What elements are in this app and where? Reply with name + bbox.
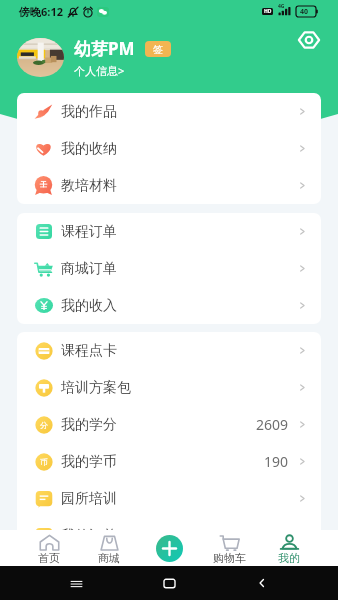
staticText: 我的学币 (61, 453, 117, 471)
staticText: 我的作品 (61, 103, 117, 121)
staticText: 教培材料 (61, 177, 117, 195)
button[interactable]: 我的作品 (17, 93, 321, 130)
button[interactable]: 我的收纳 (17, 130, 321, 167)
button[interactable]: 币 (17, 443, 321, 480)
other: Back (256, 577, 268, 589)
button[interactable]: Avatar (17, 38, 64, 77)
staticText: 课程点卡 (61, 342, 117, 360)
button[interactable]: 商城 (79, 530, 139, 566)
staticText: 我的收入 (61, 297, 117, 315)
staticText: 购物车 (213, 551, 246, 565)
staticText: 培训方案包 (61, 379, 131, 397)
staticText: 我的订单 (61, 527, 117, 545)
button[interactable]: 培训方案包 (17, 369, 321, 406)
staticText: 商城订单 (61, 260, 117, 278)
staticText: 我的学分 (61, 416, 117, 434)
staticText: 幼芽PM (74, 37, 135, 60)
button[interactable]: 课程点卡 (17, 332, 321, 369)
staticText: 40 (300, 7, 309, 17)
button[interactable]: Settings (294, 25, 324, 55)
staticText: 190 (264, 452, 289, 471)
staticText: 课程订单 (61, 223, 117, 241)
other: Home (164, 578, 175, 589)
staticText: 签 (153, 43, 163, 56)
button[interactable]: 我的收入 (17, 287, 321, 324)
button[interactable]: 签 (145, 41, 171, 57)
staticText: HD (264, 8, 272, 15)
button[interactable]: 购物车 (199, 530, 259, 566)
staticText: 4G (278, 3, 285, 10)
other: Recents (70, 577, 83, 590)
button[interactable]: 教培材料 (17, 167, 321, 204)
button[interactable]: 首页 (19, 530, 79, 566)
staticText: 我的收纳 (61, 140, 117, 158)
button[interactable]: 园所培训 (17, 480, 321, 517)
staticText: 币 (40, 457, 48, 467)
staticText: 分 (40, 420, 48, 430)
staticText: 首页 (38, 551, 60, 565)
staticText: 园所培训 (61, 490, 117, 508)
button[interactable]: 课程订单 (17, 213, 321, 250)
staticText: 我的 (278, 551, 300, 565)
staticText: 傍晚6:12 (19, 4, 63, 19)
button[interactable]: 个人信息> (74, 63, 125, 78)
staticText: 商城 (98, 551, 120, 565)
button[interactable]: 我的订单 (17, 517, 321, 554)
button[interactable]: 我的 (259, 530, 319, 566)
button[interactable]: 商城订单 (17, 250, 321, 287)
button[interactable]: Add (156, 535, 183, 562)
staticText: 2609 (256, 415, 289, 434)
button[interactable]: 分 (17, 406, 321, 443)
